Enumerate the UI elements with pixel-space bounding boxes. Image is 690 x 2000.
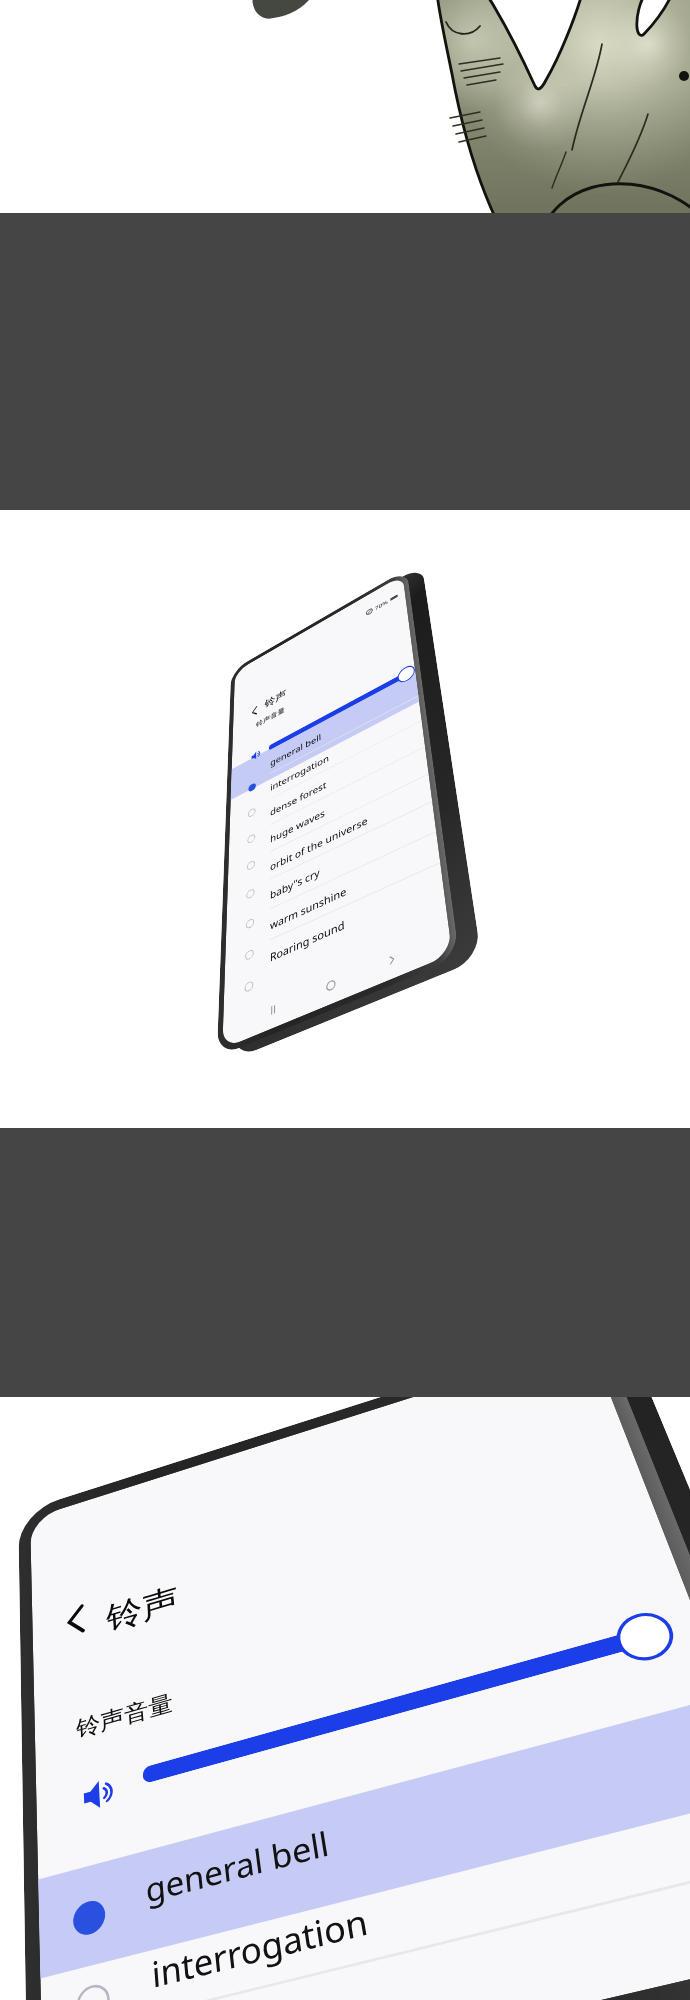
button[interactable]: 铃声	[265, 688, 286, 711]
button[interactable]: 铃声	[105, 1579, 180, 1639]
button[interactable]: interrogation	[150, 1896, 372, 1998]
other: Volume	[251, 747, 262, 763]
button[interactable]: orbit of the universe	[270, 813, 368, 873]
button[interactable]: baby"s cry	[270, 865, 321, 902]
other: Home	[325, 978, 336, 993]
button[interactable]: Back	[62, 1601, 89, 1640]
button[interactable]: huge waves	[270, 806, 325, 845]
button[interactable]	[142, 1628, 648, 1784]
button[interactable]: warm sunshine	[270, 883, 347, 932]
button[interactable]: dense forest	[157, 1989, 374, 2000]
button[interactable]	[269, 672, 407, 751]
button[interactable]: Roaring sound	[270, 917, 345, 964]
button[interactable]: general bell	[270, 731, 322, 768]
button[interactable]: general bell	[144, 1820, 332, 1912]
button[interactable]: interrogation	[270, 751, 329, 793]
other: Recents	[268, 1002, 278, 1017]
button[interactable]: dense forest	[270, 778, 327, 818]
other: Volume	[82, 1771, 120, 1817]
staticText: 铃声音量	[256, 705, 285, 729]
staticText: 70%	[375, 598, 388, 612]
button[interactable]: Back	[250, 705, 258, 718]
staticText: 铃声音量	[76, 1688, 174, 1744]
other: Forward	[386, 952, 398, 968]
